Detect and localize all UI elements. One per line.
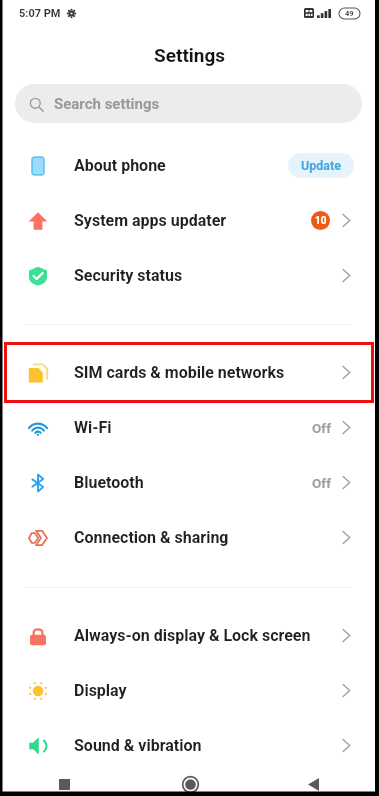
- button[interactable]: SIM cards & mobile networks: [0, 345, 379, 400]
- button[interactable]: System apps updater: [0, 193, 379, 248]
- button[interactable]: Security status: [0, 248, 379, 303]
- staticText: About phone: [74, 156, 166, 175]
- button[interactable]: Connection & sharing: [0, 510, 379, 565]
- button[interactable]: Back: [289, 773, 337, 796]
- staticText: Settings: [154, 44, 226, 66]
- button[interactable]: Always-on display & Lock screen: [0, 608, 379, 663]
- staticText: 5:07 PM: [19, 7, 61, 20]
- button[interactable]: Display: [0, 663, 379, 718]
- button[interactable]: Recents: [40, 773, 88, 796]
- staticText: Display: [74, 681, 127, 700]
- button[interactable]: Update: [288, 153, 354, 178]
- button[interactable]: Wi-Fi: [0, 400, 379, 455]
- button[interactable]: Sound & vibration: [0, 718, 379, 773]
- staticText: Sound & vibration: [74, 736, 202, 755]
- staticText: Always-on display & Lock screen: [74, 626, 311, 645]
- staticText: Update: [301, 158, 341, 173]
- staticText: Search settings: [54, 95, 160, 113]
- staticText: Wi-Fi: [74, 418, 112, 437]
- staticText: Off: [312, 475, 331, 491]
- staticText: Security status: [74, 266, 183, 285]
- staticText: SIM cards & mobile networks: [74, 363, 285, 382]
- button[interactable]: About phone: [0, 138, 379, 193]
- button[interactable]: Search settings: [15, 84, 362, 123]
- staticText: 49: [345, 9, 354, 18]
- button[interactable]: Bluetooth: [0, 455, 379, 510]
- staticText: Off: [312, 420, 331, 436]
- staticText: 10: [315, 215, 327, 227]
- staticText: Connection & sharing: [74, 528, 229, 547]
- staticText: Bluetooth: [74, 473, 144, 492]
- staticText: System apps updater: [74, 211, 227, 230]
- button[interactable]: Home: [166, 773, 214, 796]
